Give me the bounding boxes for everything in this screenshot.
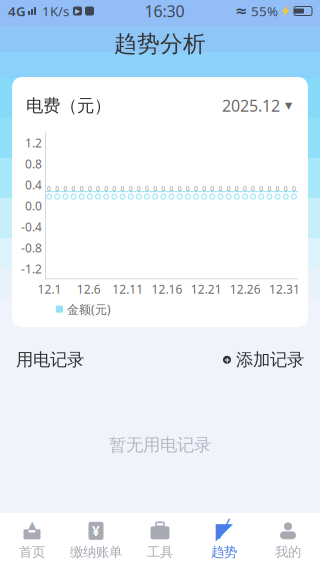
- staticText: 0: [178, 184, 182, 193]
- staticText: 12.16: [151, 281, 182, 297]
- staticText: 添加记录: [236, 349, 304, 370]
- staticText: 12.1: [38, 281, 62, 297]
- staticText: 0: [235, 184, 239, 193]
- staticText: 16:30: [144, 0, 184, 22]
- staticText: 0: [218, 184, 222, 193]
- staticText: 0: [251, 184, 255, 193]
- staticText: -1.2: [21, 261, 42, 277]
- staticText: 用电记录: [16, 349, 84, 370]
- staticText: 0: [120, 184, 124, 193]
- staticText: 0: [145, 184, 149, 193]
- staticText: 0: [292, 184, 296, 193]
- staticText: 0: [137, 184, 141, 193]
- staticText: ▲: [26, 517, 37, 534]
- staticText: 12.31: [269, 281, 300, 297]
- staticText: 12.6: [77, 281, 101, 297]
- staticText: +: [224, 354, 229, 366]
- button[interactable]: ▲: [0, 514, 64, 568]
- button[interactable]: +: [223, 345, 304, 374]
- staticText: 1.2: [25, 135, 42, 151]
- staticText: 0.4: [25, 177, 42, 193]
- staticText: 12.26: [230, 281, 261, 297]
- staticText: 55%: [251, 2, 278, 20]
- staticText: 0: [227, 184, 231, 193]
- staticText: 0: [47, 184, 51, 193]
- staticText: 0.0: [25, 198, 42, 214]
- staticText: 12.11: [112, 281, 143, 297]
- staticText: 0: [104, 184, 108, 193]
- staticText: -0.8: [21, 240, 42, 256]
- staticText: 暂无用电记录: [109, 434, 211, 456]
- staticText: 0: [63, 184, 67, 193]
- staticText: 0: [129, 184, 133, 193]
- staticText: 0: [276, 184, 280, 193]
- staticText: 趋势分析: [114, 30, 206, 58]
- staticText: 0: [72, 184, 76, 193]
- staticText: ▼: [285, 100, 292, 111]
- staticText: 0: [88, 184, 92, 193]
- staticText: 0: [153, 184, 157, 193]
- staticText: ¥: [92, 522, 100, 540]
- staticText: 工具: [147, 544, 173, 560]
- staticText: 缴纳账单: [70, 544, 122, 560]
- staticText: ╱: [219, 519, 229, 539]
- staticText: ≈: [235, 3, 247, 19]
- staticText: 0: [112, 184, 116, 193]
- staticText: 我的: [275, 544, 301, 560]
- staticText: 0: [210, 184, 214, 193]
- staticText: 0: [169, 184, 173, 193]
- staticText: 趋势: [211, 544, 237, 560]
- staticText: 0: [80, 184, 84, 193]
- staticText: 2025.12: [222, 95, 280, 116]
- staticText: 0: [55, 184, 59, 193]
- staticText: 4G: [8, 2, 26, 20]
- button[interactable]: 工具: [128, 514, 192, 568]
- staticText: 0: [96, 184, 100, 193]
- staticText: 首页: [19, 544, 45, 560]
- staticText: ⚡: [280, 6, 292, 16]
- button[interactable]: ¥: [64, 514, 128, 568]
- button[interactable]: 我的: [256, 514, 320, 568]
- button[interactable]: 2025.12: [220, 91, 294, 120]
- button[interactable]: ◤: [192, 514, 256, 568]
- staticText: 0: [186, 184, 190, 193]
- staticText: 1K/s: [42, 2, 69, 20]
- staticText: 0: [267, 184, 271, 193]
- staticText: 0.8: [25, 156, 42, 172]
- staticText: 0: [161, 184, 165, 193]
- staticText: 12.21: [191, 281, 222, 297]
- staticText: 0: [284, 184, 288, 193]
- staticText: 电费（元）: [26, 95, 111, 116]
- staticText: -0.4: [21, 219, 42, 235]
- staticText: 0: [202, 184, 206, 193]
- staticText: ◤: [215, 518, 232, 544]
- staticText: 金额(元): [67, 301, 111, 317]
- staticText: 0: [243, 184, 247, 193]
- staticText: ▶: [75, 7, 80, 15]
- staticText: 0: [259, 184, 263, 193]
- staticText: 0: [194, 184, 198, 193]
